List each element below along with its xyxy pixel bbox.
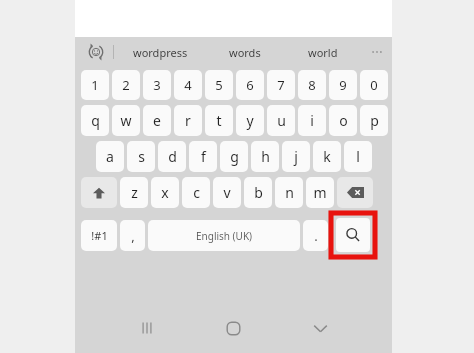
button[interactable]: Emoji	[83, 39, 109, 65]
staticText: i	[310, 111, 314, 130]
button[interactable]: q	[81, 105, 109, 136]
staticText: !#1	[91, 228, 108, 243]
button[interactable]: m	[306, 177, 334, 208]
button[interactable]: 1	[81, 70, 109, 100]
button[interactable]: English (UK)	[148, 220, 300, 251]
button[interactable]: More suggestions	[362, 37, 392, 67]
staticText: x	[161, 183, 169, 202]
button[interactable]: Shift	[81, 177, 117, 208]
button[interactable]: h	[251, 141, 279, 172]
button[interactable]: 4	[174, 70, 202, 100]
button[interactable]: j	[282, 141, 310, 172]
staticText: ,	[131, 227, 135, 245]
staticText: y	[246, 111, 254, 130]
staticText: 6	[246, 76, 254, 94]
button[interactable]: 7	[267, 70, 295, 100]
button[interactable]: 8	[298, 70, 326, 100]
button[interactable]: v	[213, 177, 241, 208]
button[interactable]: Hide keyboard	[277, 303, 364, 353]
staticText: r	[185, 111, 191, 130]
staticText: 0	[370, 76, 378, 94]
staticText: .	[314, 227, 318, 245]
button[interactable]: c	[182, 177, 210, 208]
staticText: o	[339, 111, 348, 130]
staticText: s	[138, 147, 145, 166]
staticText: z	[131, 183, 138, 202]
staticText: p	[370, 111, 379, 130]
button[interactable]: 9	[329, 70, 357, 100]
staticText: n	[285, 183, 294, 202]
button[interactable]: words	[206, 37, 284, 67]
button[interactable]: 0	[360, 70, 388, 100]
staticText: f	[201, 147, 206, 166]
button[interactable]: k	[313, 141, 341, 172]
button[interactable]: world	[284, 37, 362, 67]
staticText: l	[356, 147, 360, 166]
button[interactable]: t	[205, 105, 233, 136]
button[interactable]: Search	[336, 218, 370, 252]
button[interactable]: wordpress	[114, 37, 206, 67]
button[interactable]: Home	[190, 303, 277, 353]
button[interactable]: y	[236, 105, 264, 136]
button[interactable]: f	[189, 141, 217, 172]
button[interactable]: 3	[143, 70, 171, 100]
staticText: h	[261, 147, 270, 166]
button[interactable]: w	[112, 105, 140, 136]
button[interactable]: 6	[236, 70, 264, 100]
staticText: world	[308, 45, 338, 60]
button[interactable]: s	[127, 141, 155, 172]
staticText: 7	[277, 76, 285, 94]
button[interactable]: l	[344, 141, 372, 172]
button[interactable]: n	[275, 177, 303, 208]
button[interactable]: a	[96, 141, 124, 172]
button[interactable]: 5	[205, 70, 233, 100]
staticText: k	[323, 147, 331, 166]
button[interactable]: Recents	[103, 303, 190, 353]
button[interactable]: z	[120, 177, 148, 208]
button[interactable]: g	[220, 141, 248, 172]
staticText: b	[254, 183, 263, 202]
staticText: q	[91, 111, 100, 130]
button[interactable]: i	[298, 105, 326, 136]
button[interactable]: Backspace	[337, 177, 373, 208]
staticText: 9	[339, 76, 347, 94]
staticText: c	[193, 183, 200, 202]
staticText: 5	[215, 76, 223, 94]
staticText: wordpress	[133, 45, 188, 60]
staticText: 4	[184, 76, 192, 94]
staticText: t	[216, 111, 222, 130]
button[interactable]: e	[143, 105, 171, 136]
button[interactable]: p	[360, 105, 388, 136]
staticText: v	[223, 183, 231, 202]
staticText: 1	[91, 76, 99, 94]
button[interactable]: .	[303, 220, 328, 251]
button[interactable]: u	[267, 105, 295, 136]
button[interactable]: !#1	[81, 220, 117, 251]
staticText: words	[229, 45, 261, 60]
button[interactable]: d	[158, 141, 186, 172]
button[interactable]: b	[244, 177, 272, 208]
staticText: d	[168, 147, 177, 166]
staticText: 2	[122, 76, 130, 94]
staticText: 3	[153, 76, 161, 94]
staticText: m	[313, 183, 327, 202]
button[interactable]: ,	[120, 220, 145, 251]
staticText: u	[277, 111, 286, 130]
staticText: a	[106, 147, 114, 166]
staticText: w	[120, 111, 132, 130]
staticText: 8	[308, 76, 316, 94]
staticText: English (UK)	[196, 229, 253, 243]
staticText: e	[153, 111, 161, 130]
button[interactable]: x	[151, 177, 179, 208]
button[interactable]: r	[174, 105, 202, 136]
staticText: g	[230, 147, 239, 166]
button[interactable]: o	[329, 105, 357, 136]
button[interactable]: 2	[112, 70, 140, 100]
staticText: j	[294, 147, 298, 166]
